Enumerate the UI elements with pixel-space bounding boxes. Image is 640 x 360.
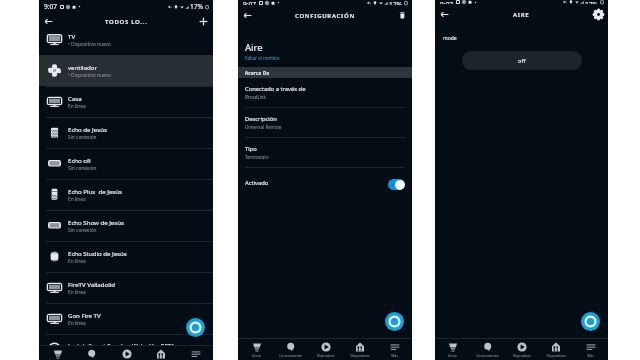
staticText: 17% [190,2,204,11]
staticText: Comunicación [279,353,302,358]
button[interactable]: Back [42,15,55,28]
button[interactable]: Inicio [41,346,74,360]
staticText: Más [391,353,398,358]
staticText: Sin conexión [68,134,97,141]
button[interactable]: Gon Fire TV [39,303,213,334]
staticText: Termostato [245,154,269,160]
staticText: ventilador [68,63,98,71]
staticText: Conectado a través de [245,85,306,93]
staticText: Activado [245,179,269,187]
staticText: TODOS LO... [105,18,148,26]
staticText: Jesús's Smart Speaker Wake Up BETA [68,341,175,349]
staticText: En línea [68,258,86,265]
button[interactable]: FireTV Valladolid [39,272,213,303]
staticText: En línea [68,103,86,110]
staticText: Inicio [448,353,457,358]
staticText: TV [68,32,76,40]
staticText: Casa [68,94,82,102]
staticText: Echo Show de Jesús [68,218,124,226]
staticText: 9:07 [44,2,58,11]
staticText: off [518,57,526,65]
button[interactable]: Comunicación [274,339,307,360]
staticText: En línea [68,289,86,296]
button[interactable]: Conectado a través de [238,78,412,108]
staticText: Echo ofi [68,156,91,164]
staticText: CONFIGURACIÓN [295,12,355,20]
staticText: Dispositivos [546,353,566,358]
button[interactable]: Alexa [385,312,404,331]
button[interactable]: Echo Studio de Jesús [39,241,213,272]
staticText: mode [443,35,457,42]
staticText: Dispositivos [350,353,370,358]
button[interactable]: Más [574,339,607,360]
staticText: Comunicación [476,353,499,358]
button[interactable]: Comunicación [471,339,504,360]
button[interactable]: Back [438,8,451,21]
button[interactable]: Jesús's Smart Speaker Wake Up BETA [39,334,213,360]
button[interactable]: Casa [39,86,213,117]
staticText: Sin conexión [68,165,97,172]
button[interactable]: Inicio [436,339,469,360]
staticText: BroadLink [245,94,266,100]
staticText: En línea [68,320,86,327]
staticText: Tipo [245,145,257,153]
button[interactable]: Back [241,9,254,22]
button[interactable]: Descripción [238,108,412,138]
staticText: Universal Remote [245,124,282,130]
staticText: Sin conexión [68,227,97,234]
button[interactable]: Más [378,339,411,360]
button[interactable]: Alexa [186,318,205,337]
button[interactable]: Echo ofi [39,148,213,179]
staticText: • Dispositivo nuevo [68,72,111,79]
staticText: Descripción [245,115,277,123]
staticText: 9:07 [243,0,257,5]
staticText: Acerca De [245,70,270,76]
staticText: Gon Fire TV [68,311,101,319]
staticText: AIRE [513,11,530,19]
button[interactable]: Reproducir [309,339,342,360]
button[interactable]: Tipo [238,138,412,168]
staticText: Echo de Jesús [68,125,107,133]
button[interactable]: Comunicación [75,346,108,360]
staticText: En línea [68,196,86,203]
button[interactable]: Dispositivos [343,339,376,360]
button[interactable]: Editar el nombre [245,55,280,61]
button[interactable]: TV [39,24,213,55]
button[interactable]: Delete [396,9,409,22]
staticText: 9:07 [440,0,454,4]
button[interactable]: ventilador [39,55,213,86]
staticText: Echo Plus de Jesús [68,187,122,195]
button[interactable]: Add [197,15,210,28]
staticText: Reproducir [317,353,335,358]
staticText: • Dispositivo nuevo [68,41,111,48]
staticText: Más [587,353,594,358]
staticText: Echo Studio de Jesús [68,249,127,257]
button[interactable]: Reproducir [505,339,538,360]
button[interactable]: Dispositivos [144,346,177,360]
staticText: 17% [585,0,599,4]
button[interactable]: Inicio [240,339,273,360]
button[interactable]: Echo Show de Jesús [39,210,213,241]
button[interactable]: Dispositivos [539,339,572,360]
button[interactable]: Echo de Jesús [39,117,213,148]
button[interactable]: off [462,51,582,70]
button[interactable]: Activado [388,179,405,190]
staticText: Inicio [252,353,261,358]
button[interactable]: Reproducir [110,346,143,360]
staticText: Aire [245,41,263,54]
button[interactable]: Echo Plus de Jesús [39,179,213,210]
staticText: 17% [389,0,403,5]
button[interactable]: Alexa [581,312,600,331]
staticText: Reproducir [513,353,531,358]
staticText: FireTV Valladolid [68,280,116,288]
button[interactable]: Settings [592,8,605,21]
button[interactable]: Más [179,346,212,360]
